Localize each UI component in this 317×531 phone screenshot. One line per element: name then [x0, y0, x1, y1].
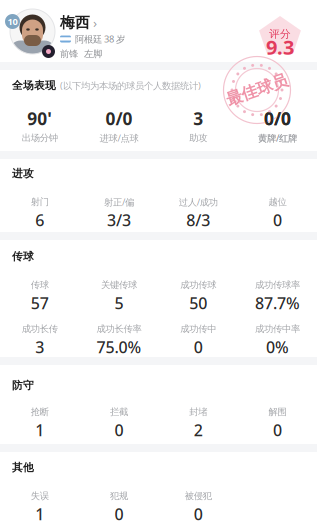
staticText: 成功传球 — [180, 279, 216, 291]
staticText: 射门 — [31, 196, 49, 208]
staticText: 失误 — [31, 490, 49, 502]
staticText: 关键传球 — [101, 279, 137, 291]
staticText: 防守 — [12, 379, 34, 392]
staticText: 成功长传率 — [96, 323, 141, 335]
staticText: 射正/偏 — [104, 196, 134, 208]
staticText: 过人/成功 — [179, 196, 218, 208]
staticText: 封堵 — [189, 406, 207, 418]
staticText: 57 — [31, 292, 49, 314]
staticText: 评分 — [269, 27, 291, 40]
staticText: 前锋 左脚 — [60, 48, 102, 60]
staticText: 8/3 — [186, 209, 210, 231]
staticText: 90' — [27, 107, 52, 130]
staticText: 成功传中率 — [255, 323, 300, 335]
staticText: 传球 — [31, 279, 49, 291]
staticText: 0 — [273, 209, 282, 231]
staticText: 成功长传 — [22, 323, 58, 335]
staticText: 被侵犯 — [185, 490, 212, 502]
staticText: 2 — [194, 419, 203, 441]
staticText: 5 — [114, 292, 123, 314]
staticText: 6 — [35, 209, 44, 231]
staticText: 3 — [35, 336, 44, 358]
staticText: 犯规 — [110, 490, 128, 502]
staticText: 3/3 — [107, 209, 131, 231]
staticText: 进攻 — [12, 167, 34, 180]
staticText: 0/0 — [264, 107, 291, 130]
staticText: 阿根廷 38 岁 — [75, 33, 125, 45]
staticText: 87.7% — [255, 292, 300, 314]
staticText: 其他 — [12, 461, 34, 474]
staticText: 0% — [266, 336, 289, 358]
staticText: 拦截 — [110, 406, 128, 418]
staticText: 越位 — [268, 196, 286, 208]
staticText: 成功传中 — [180, 323, 216, 335]
staticText: › — [93, 14, 97, 31]
staticText: (以下均为本场的球员个人数据统计) — [60, 79, 201, 92]
staticText: 解围 — [268, 406, 286, 418]
staticText: 最佳球员 — [225, 80, 289, 100]
staticText: 黄牌/红牌 — [258, 132, 297, 144]
staticText: 0 — [114, 503, 123, 525]
staticText: 黄牌/红牌 — [258, 132, 297, 144]
staticText: 3 — [193, 107, 203, 130]
button[interactable]: 梅西 — [0, 0, 150, 43]
staticText: 成功传球率 — [255, 279, 300, 291]
staticText: 0 — [194, 503, 203, 525]
staticText: 50 — [189, 292, 207, 314]
staticText: 0/0 — [264, 107, 291, 130]
staticText: 0 — [273, 419, 282, 441]
staticText: 9.3 — [266, 34, 294, 60]
staticText: 0/0 — [105, 107, 132, 130]
staticText: 0 — [194, 336, 203, 358]
staticText: 抢断 — [31, 406, 49, 418]
staticText: 0 — [114, 419, 123, 441]
staticText: 75.0% — [96, 336, 141, 358]
staticText: 出场分钟 — [22, 132, 58, 144]
staticText: 1 — [35, 503, 44, 525]
staticText: 10 — [7, 15, 17, 28]
staticText: 进球/点球 — [99, 132, 138, 144]
staticText: 传球 — [12, 250, 34, 263]
staticText: 全场表现 — [12, 79, 56, 92]
staticText: 1 — [35, 419, 44, 441]
staticText: 梅西 — [60, 13, 90, 31]
staticText: 助攻 — [189, 132, 207, 144]
